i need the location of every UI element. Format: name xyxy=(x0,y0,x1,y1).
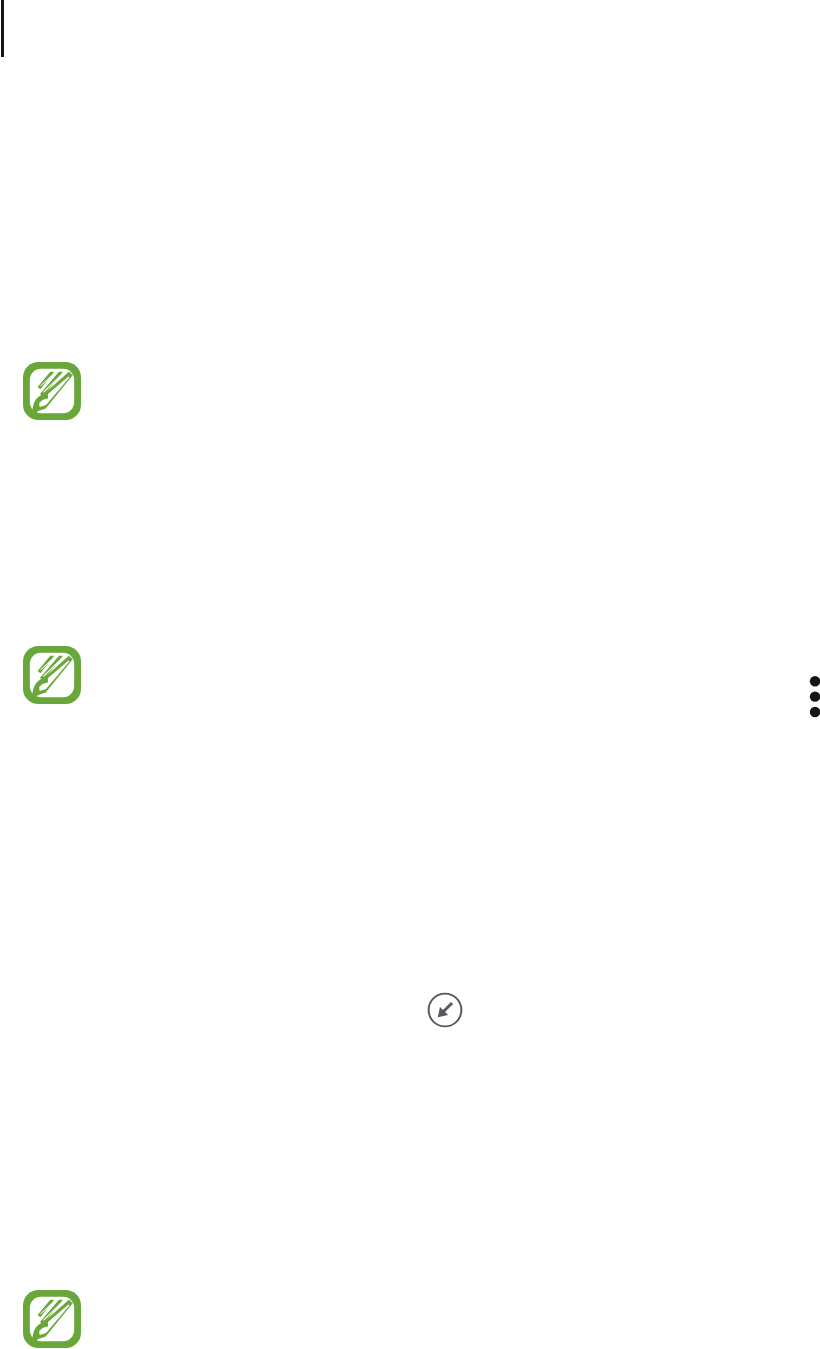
button[interactable]: Collapse xyxy=(427,992,463,1028)
button[interactable]: Samsung Notes xyxy=(23,646,81,704)
button[interactable]: Samsung Notes xyxy=(23,1290,81,1348)
button[interactable]: More options xyxy=(801,676,820,712)
button[interactable]: Samsung Notes xyxy=(23,362,81,420)
